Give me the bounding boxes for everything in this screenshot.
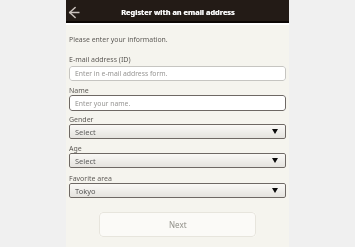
staticText: Please enter your information. [69, 35, 168, 44]
staticText: Favorite area [69, 174, 112, 183]
button[interactable]: Select [69, 124, 286, 139]
button[interactable]: Back [65, 1, 84, 24]
button[interactable]: Enter in e-mail address form. [69, 66, 286, 81]
button[interactable]: Next [99, 212, 256, 237]
button[interactable]: Enter your name. [69, 95, 286, 111]
staticText: Name [69, 86, 89, 95]
button[interactable]: Select [69, 153, 286, 168]
staticText: Enter your name. [75, 99, 131, 108]
staticText: Tokyo [75, 186, 96, 196]
staticText: Select [75, 156, 96, 166]
staticText: E-mail address (ID) [69, 55, 131, 64]
staticText: Enter in e-mail address form. [75, 69, 168, 78]
button[interactable]: Tokyo [69, 183, 286, 198]
staticText: Select [75, 127, 96, 137]
staticText: Age [69, 144, 82, 153]
staticText: Gender [69, 115, 94, 124]
staticText: Register with an email address [121, 7, 235, 17]
staticText: Next [169, 219, 187, 230]
